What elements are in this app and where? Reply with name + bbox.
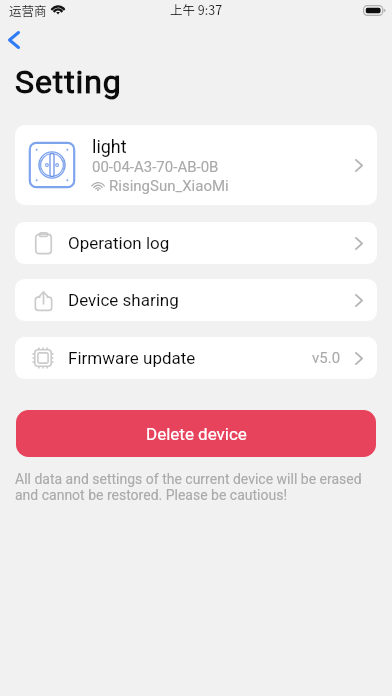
staticText: Setting bbox=[15, 63, 122, 101]
button[interactable]: light bbox=[15, 125, 377, 205]
button[interactable]: Delete device bbox=[16, 410, 376, 457]
staticText: light bbox=[92, 136, 127, 157]
staticText: 运营商 bbox=[9, 1, 47, 19]
staticText: Firmware update bbox=[68, 348, 196, 368]
staticText: RisingSun_XiaoMi bbox=[109, 177, 229, 195]
staticText: 00-04-A3-70-AB-0B bbox=[92, 158, 219, 176]
staticText: Device sharing bbox=[68, 290, 179, 310]
staticText: All data and settings of the current dev… bbox=[15, 471, 372, 503]
staticText: v5.0 bbox=[312, 349, 341, 367]
staticText: Delete device bbox=[146, 424, 247, 444]
staticText: Operation log bbox=[68, 233, 170, 253]
button[interactable]: Device sharing bbox=[15, 279, 377, 321]
button[interactable]: Operation log bbox=[15, 222, 377, 264]
staticText: 上午 9:37 bbox=[170, 0, 223, 18]
button[interactable]: Back bbox=[0, 24, 30, 56]
button[interactable]: Firmware update bbox=[15, 337, 377, 379]
